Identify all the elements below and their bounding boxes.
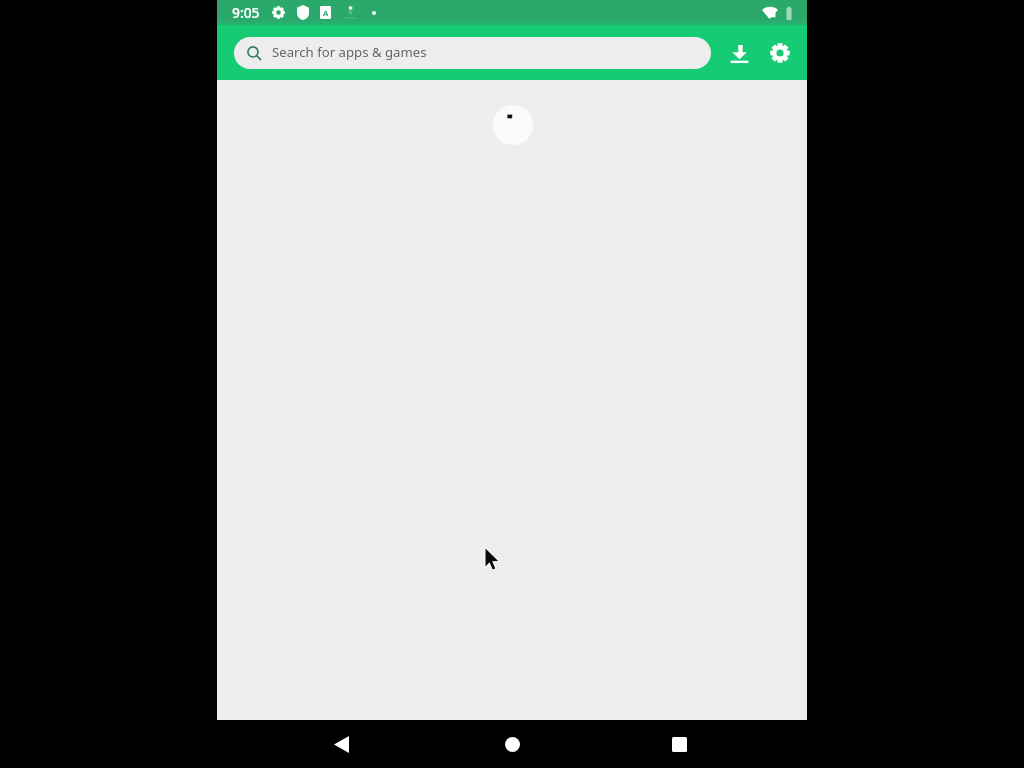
button[interactable]: My apps and downloads xyxy=(719,33,759,73)
staticText: 9:05 xyxy=(232,3,260,22)
button[interactable]: Home xyxy=(488,720,536,768)
button[interactable]: Settings xyxy=(760,33,800,73)
button[interactable]: Search for apps & games xyxy=(234,37,711,69)
staticText: Search for apps & games xyxy=(272,43,427,61)
staticText: A xyxy=(323,8,329,18)
button[interactable]: Recents xyxy=(655,720,703,768)
button[interactable]: Back xyxy=(317,720,365,768)
